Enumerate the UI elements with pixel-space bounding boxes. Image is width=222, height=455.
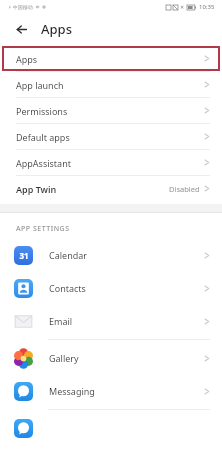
staticText: APP SETTINGS [16,224,70,234]
staticText: Permissions [16,105,68,117]
staticText: Apps [41,20,72,38]
button[interactable]: Default apps [0,124,222,149]
staticText: Disabled [169,184,200,194]
button[interactable]: Back [12,20,30,38]
staticText: ✕ [180,4,185,10]
button[interactable]: App Twin [0,176,222,201]
staticText: Contacts [49,282,86,294]
button[interactable]: AppAssistant [0,150,222,175]
staticText: App launch [16,79,64,91]
staticText: Gallery [49,352,79,364]
staticText: AppAssistant [16,157,71,169]
staticText: Apps [16,53,38,65]
button[interactable]: Email [0,308,222,334]
staticText: 10:35 [199,3,215,11]
button[interactable]: Gallery [0,345,222,371]
staticText: 31 [19,250,29,261]
staticText: Default apps [16,131,70,143]
staticText: ⚡ 中国移动 [8,4,33,11]
button[interactable]: Messaging [0,378,222,404]
staticText: App Twin [16,183,57,195]
staticText: Calendar [49,249,87,261]
staticText: Email [49,315,73,327]
button[interactable]: Apps [0,46,222,71]
button[interactable]: 31 [0,242,222,268]
button[interactable]: App launch [0,72,222,97]
staticText: Messaging [49,385,95,397]
button[interactable] [0,415,222,441]
button[interactable]: Contacts [0,275,222,301]
button[interactable]: Permissions [0,98,222,123]
